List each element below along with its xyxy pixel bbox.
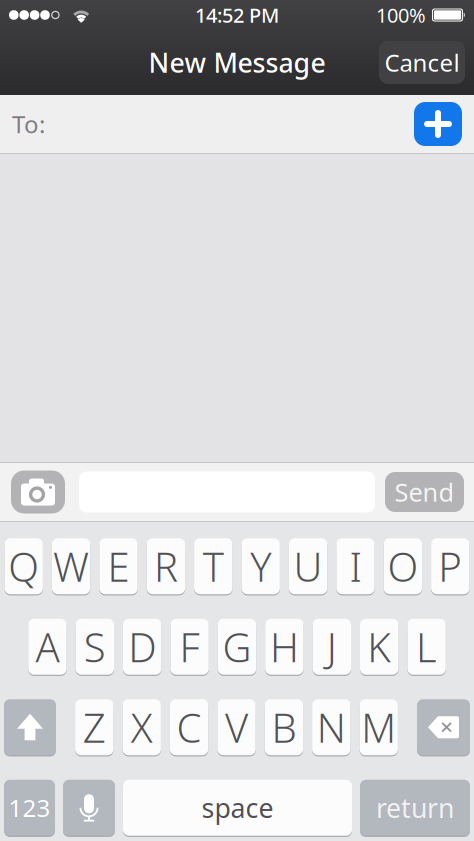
button[interactable]: T <box>194 537 232 595</box>
button[interactable]: P <box>431 537 469 595</box>
button[interactable]: K <box>360 618 398 676</box>
button[interactable]: D <box>123 618 161 676</box>
button[interactable]: Delete <box>417 698 470 756</box>
button[interactable]: Add Contact <box>414 102 462 146</box>
button[interactable]: E <box>99 537 138 595</box>
staticText: 123 <box>8 792 50 824</box>
button[interactable]: 123 <box>4 779 55 837</box>
button[interactable]: Q <box>4 537 43 595</box>
staticText: O <box>387 540 418 593</box>
button[interactable]: Shift <box>4 698 56 756</box>
staticText: K <box>367 620 391 673</box>
button[interactable]: C <box>170 698 208 756</box>
button[interactable]: M <box>359 698 398 756</box>
staticText: Z <box>83 701 106 754</box>
staticText: Y <box>250 540 271 593</box>
staticText: New Message <box>148 45 325 80</box>
staticText: L <box>416 620 437 673</box>
staticText: X <box>131 701 153 754</box>
staticText: M <box>361 701 396 754</box>
button[interactable]: O <box>384 537 422 595</box>
button[interactable]: X <box>122 698 161 756</box>
staticText: C <box>177 701 202 754</box>
button[interactable]: U <box>289 537 327 595</box>
button[interactable]: R <box>147 537 185 595</box>
button[interactable]: W <box>52 537 90 595</box>
staticText: 100% <box>376 2 426 28</box>
staticText: F <box>180 620 200 673</box>
staticText: A <box>35 620 59 673</box>
button[interactable]: Dictate <box>63 779 115 837</box>
button[interactable]: G <box>218 618 256 676</box>
staticText: S <box>84 620 106 673</box>
button[interactable]: L <box>407 618 446 676</box>
button[interactable]: B <box>265 698 303 756</box>
button[interactable]: A <box>28 618 67 676</box>
button[interactable]: V <box>217 698 256 756</box>
button[interactable]: N <box>312 698 350 756</box>
button[interactable]: return <box>360 779 470 837</box>
staticText: space <box>201 790 273 825</box>
staticText: return <box>376 790 454 825</box>
button[interactable]: space <box>123 779 352 837</box>
button[interactable]: Y <box>241 537 280 595</box>
staticText: I <box>349 540 361 593</box>
staticText: W <box>53 540 89 593</box>
staticText: P <box>438 540 462 593</box>
staticText: To: <box>12 108 45 140</box>
staticText: B <box>271 701 296 754</box>
staticText: H <box>270 620 299 673</box>
staticText: D <box>128 620 156 673</box>
staticText: Send <box>394 475 454 509</box>
staticText: N <box>317 701 346 754</box>
button[interactable]: S <box>76 618 114 676</box>
staticText: J <box>327 620 337 673</box>
staticText: R <box>154 540 178 593</box>
button[interactable]: Cancel <box>379 41 465 84</box>
staticText: V <box>225 701 248 754</box>
button[interactable]: H <box>265 618 304 676</box>
button[interactable]: F <box>170 618 209 676</box>
staticText: E <box>107 540 129 593</box>
button[interactable]: Camera <box>11 470 65 513</box>
staticText: T <box>203 540 224 593</box>
button[interactable]: I <box>336 537 375 595</box>
staticText: U <box>294 540 323 593</box>
button[interactable]: J <box>313 618 351 676</box>
button[interactable]: Z <box>75 698 113 756</box>
button[interactable]: Send <box>385 472 464 512</box>
staticText: Cancel <box>384 47 459 78</box>
staticText: G <box>222 620 251 673</box>
staticText: 14:52 PM <box>195 2 279 28</box>
staticText: Q <box>8 540 39 593</box>
